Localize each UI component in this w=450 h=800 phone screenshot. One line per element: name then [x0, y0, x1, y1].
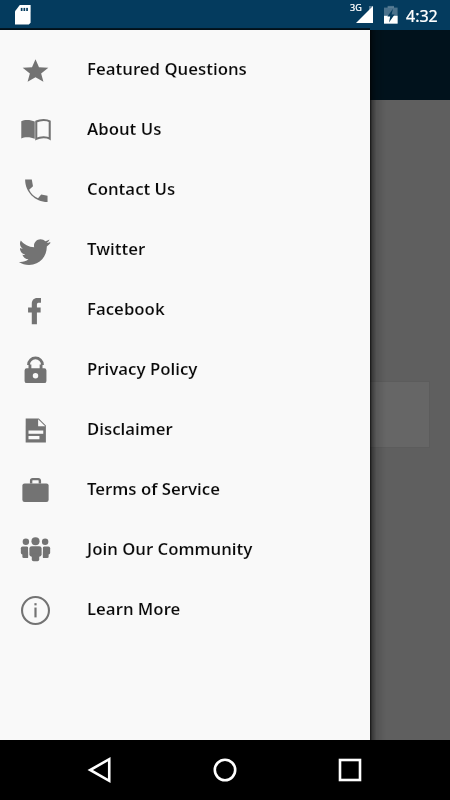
button[interactable]: Back — [76, 746, 124, 794]
staticText: Privacy Policy — [87, 357, 198, 380]
button[interactable]: Join Our Community — [0, 519, 370, 579]
button[interactable]: Recents — [326, 746, 374, 794]
staticText: Learn More — [87, 597, 181, 620]
staticText: Disclaimer — [87, 417, 173, 440]
button[interactable]: Privacy Policy — [0, 339, 370, 399]
staticText: Featured Questions — [87, 57, 247, 80]
staticText: About Us — [87, 117, 162, 140]
button[interactable]: Terms of Service — [0, 459, 370, 519]
button[interactable]: Featured Questions — [0, 39, 370, 99]
staticText: Join Our Community — [87, 537, 253, 560]
button[interactable]: About Us — [0, 99, 370, 159]
staticText: Terms of Service — [87, 477, 220, 500]
button[interactable]: Disclaimer — [0, 399, 370, 459]
button[interactable]: Home — [201, 746, 249, 794]
button[interactable]: Twitter — [0, 219, 370, 279]
staticText: 3G — [350, 1, 362, 13]
staticText: 4:32 — [406, 5, 438, 27]
button[interactable]: Learn More — [0, 579, 370, 639]
staticText: Contact Us — [87, 177, 176, 200]
staticText: Facebook — [87, 297, 165, 320]
staticText: Twitter — [87, 237, 146, 260]
button[interactable]: Contact Us — [0, 159, 370, 219]
button[interactable]: Facebook — [0, 279, 370, 339]
